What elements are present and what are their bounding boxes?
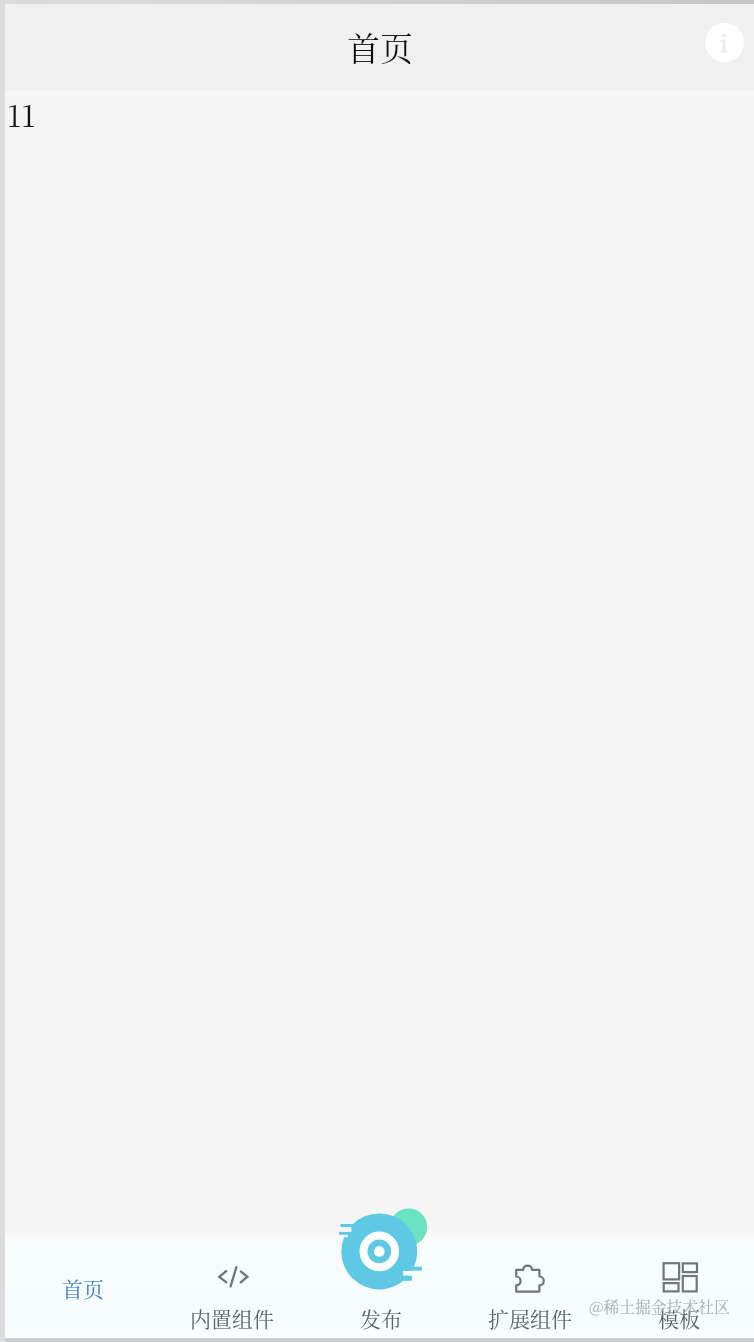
staticText: 内置组件 bbox=[190, 1303, 274, 1333]
staticText: 首页 bbox=[347, 23, 413, 70]
button[interactable]: 内置组件 bbox=[157, 1239, 306, 1338]
staticText: 扩展组件 bbox=[488, 1303, 572, 1333]
button[interactable]: 扩展组件 bbox=[455, 1239, 604, 1338]
button[interactable]: Info bbox=[703, 21, 745, 63]
button[interactable]: 发布 bbox=[306, 1239, 455, 1338]
button[interactable]: 模板 bbox=[604, 1239, 753, 1338]
staticText: 11 bbox=[7, 92, 36, 135]
staticText: i bbox=[720, 26, 728, 59]
staticText: 模板 bbox=[658, 1303, 700, 1333]
staticText: 发布 bbox=[360, 1303, 402, 1333]
staticText: @稀土掘金技术社区 bbox=[589, 1295, 730, 1318]
button[interactable]: 首页 bbox=[8, 1239, 157, 1338]
staticText: 首页 bbox=[62, 1273, 104, 1303]
